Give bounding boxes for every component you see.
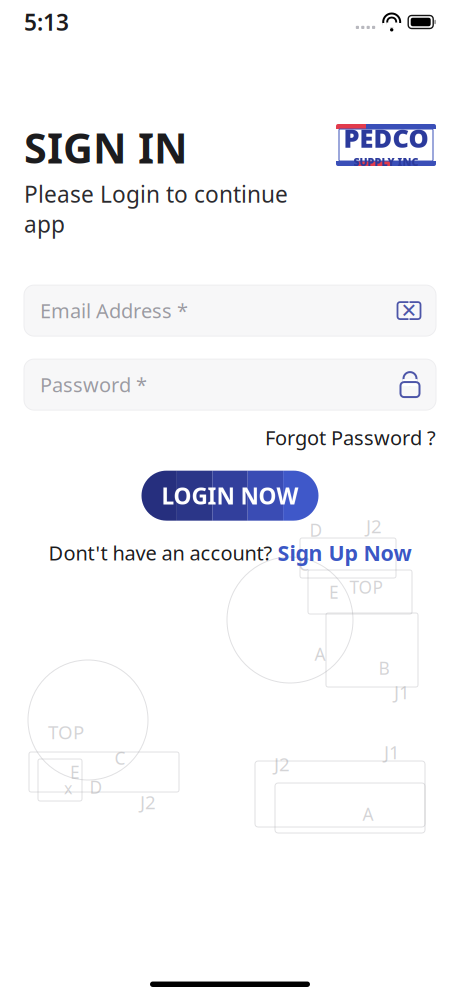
staticText: J2 (274, 752, 290, 776)
staticText: A (362, 802, 373, 825)
staticText: B (378, 656, 389, 679)
staticText: D (309, 518, 322, 541)
staticText: ✕ (400, 299, 417, 322)
staticText: J1 (384, 740, 400, 764)
staticText: SUPPLY INC (353, 155, 418, 169)
staticText: Sign Up Now (277, 539, 411, 567)
button[interactable]: Forgot Password ? (265, 424, 436, 451)
staticText: J2 (366, 514, 382, 538)
staticText: LOGIN NOW (161, 481, 298, 511)
staticText: C (114, 746, 125, 769)
staticText: PEDCO (343, 121, 428, 155)
staticText: Dont't have an account? (48, 539, 272, 566)
staticText: Forgot Password ? (265, 424, 436, 451)
staticText: D (89, 775, 102, 798)
staticText: 5:13 (24, 7, 69, 37)
staticText: Password * (40, 371, 147, 398)
button[interactable]: Password * (24, 359, 436, 410)
button[interactable]: LOGIN NOW (141, 471, 318, 521)
staticText: C (298, 552, 309, 575)
staticText: A (314, 642, 325, 665)
staticText: E (329, 580, 339, 603)
button[interactable]: Sign Up Now (277, 539, 411, 567)
staticText: J1 (394, 680, 410, 704)
staticText: SIGN IN (24, 120, 188, 175)
staticText: Please Login to continue app (24, 179, 288, 239)
staticText: E (70, 760, 80, 783)
staticText: x (64, 777, 72, 799)
staticText: TOP (349, 575, 382, 598)
staticText: Email Address * (40, 297, 188, 324)
staticText: J2 (140, 790, 156, 814)
button[interactable]: Email Address * (24, 285, 436, 336)
staticText: TOP (48, 720, 84, 744)
